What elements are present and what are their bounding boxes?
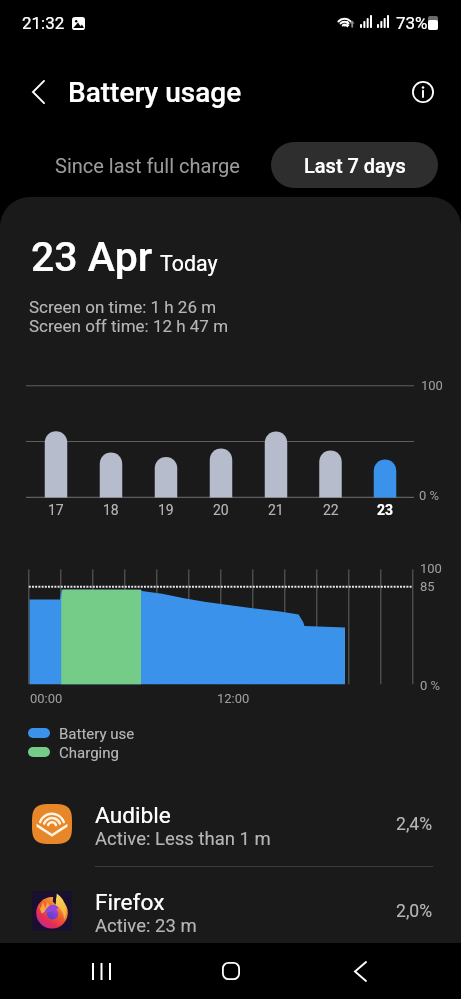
button[interactable]: Back <box>328 943 392 999</box>
staticText: 00:00 <box>30 691 63 706</box>
staticText: 73% <box>396 13 428 33</box>
button[interactable]: Audible <box>0 793 461 854</box>
staticText: 20 <box>213 502 229 518</box>
staticText: 100 <box>421 378 443 393</box>
staticText: Firefox <box>95 889 165 916</box>
staticText: Battery usage <box>68 76 242 109</box>
staticText: 22 <box>323 502 339 518</box>
staticText: Since last full charge <box>55 154 240 177</box>
staticText: 18 <box>103 502 119 518</box>
staticText: 21 <box>268 502 284 518</box>
staticText: Audible <box>95 802 171 829</box>
staticText: Screen on time: 1 h 26 m <box>29 297 217 317</box>
staticText: Active: Less than 1 m <box>95 828 271 850</box>
staticText: 23 <box>377 502 394 518</box>
staticText: 0 % <box>419 488 440 503</box>
button[interactable]: Since last full charge <box>24 142 271 188</box>
staticText: 2,0% <box>396 901 433 922</box>
staticText: 19 <box>158 502 174 518</box>
staticText: 85 <box>420 579 435 594</box>
button[interactable]: Last 7 days <box>271 142 438 188</box>
button[interactable]: Home <box>199 943 263 999</box>
staticText: Charging <box>59 744 119 762</box>
staticText: 12:00 <box>217 691 250 706</box>
staticText: Battery use <box>59 725 135 743</box>
staticText: Last 7 days <box>304 154 406 177</box>
staticText: 2,4% <box>396 814 433 835</box>
staticText: Active: 23 m <box>95 915 197 937</box>
staticText: 0 % <box>420 678 441 693</box>
button[interactable]: Recent apps <box>69 943 133 999</box>
button[interactable]: Firefox <box>0 880 461 941</box>
staticText: 100 <box>420 561 442 576</box>
staticText: Screen off time: 12 h 47 m <box>29 316 229 336</box>
staticText: 23 Apr <box>31 233 153 281</box>
button[interactable]: More information <box>397 66 449 118</box>
staticText: 21:32 <box>22 13 65 33</box>
staticText: 17 <box>48 502 64 518</box>
button[interactable]: Navigate up <box>12 66 64 118</box>
staticText: Today <box>160 251 218 276</box>
